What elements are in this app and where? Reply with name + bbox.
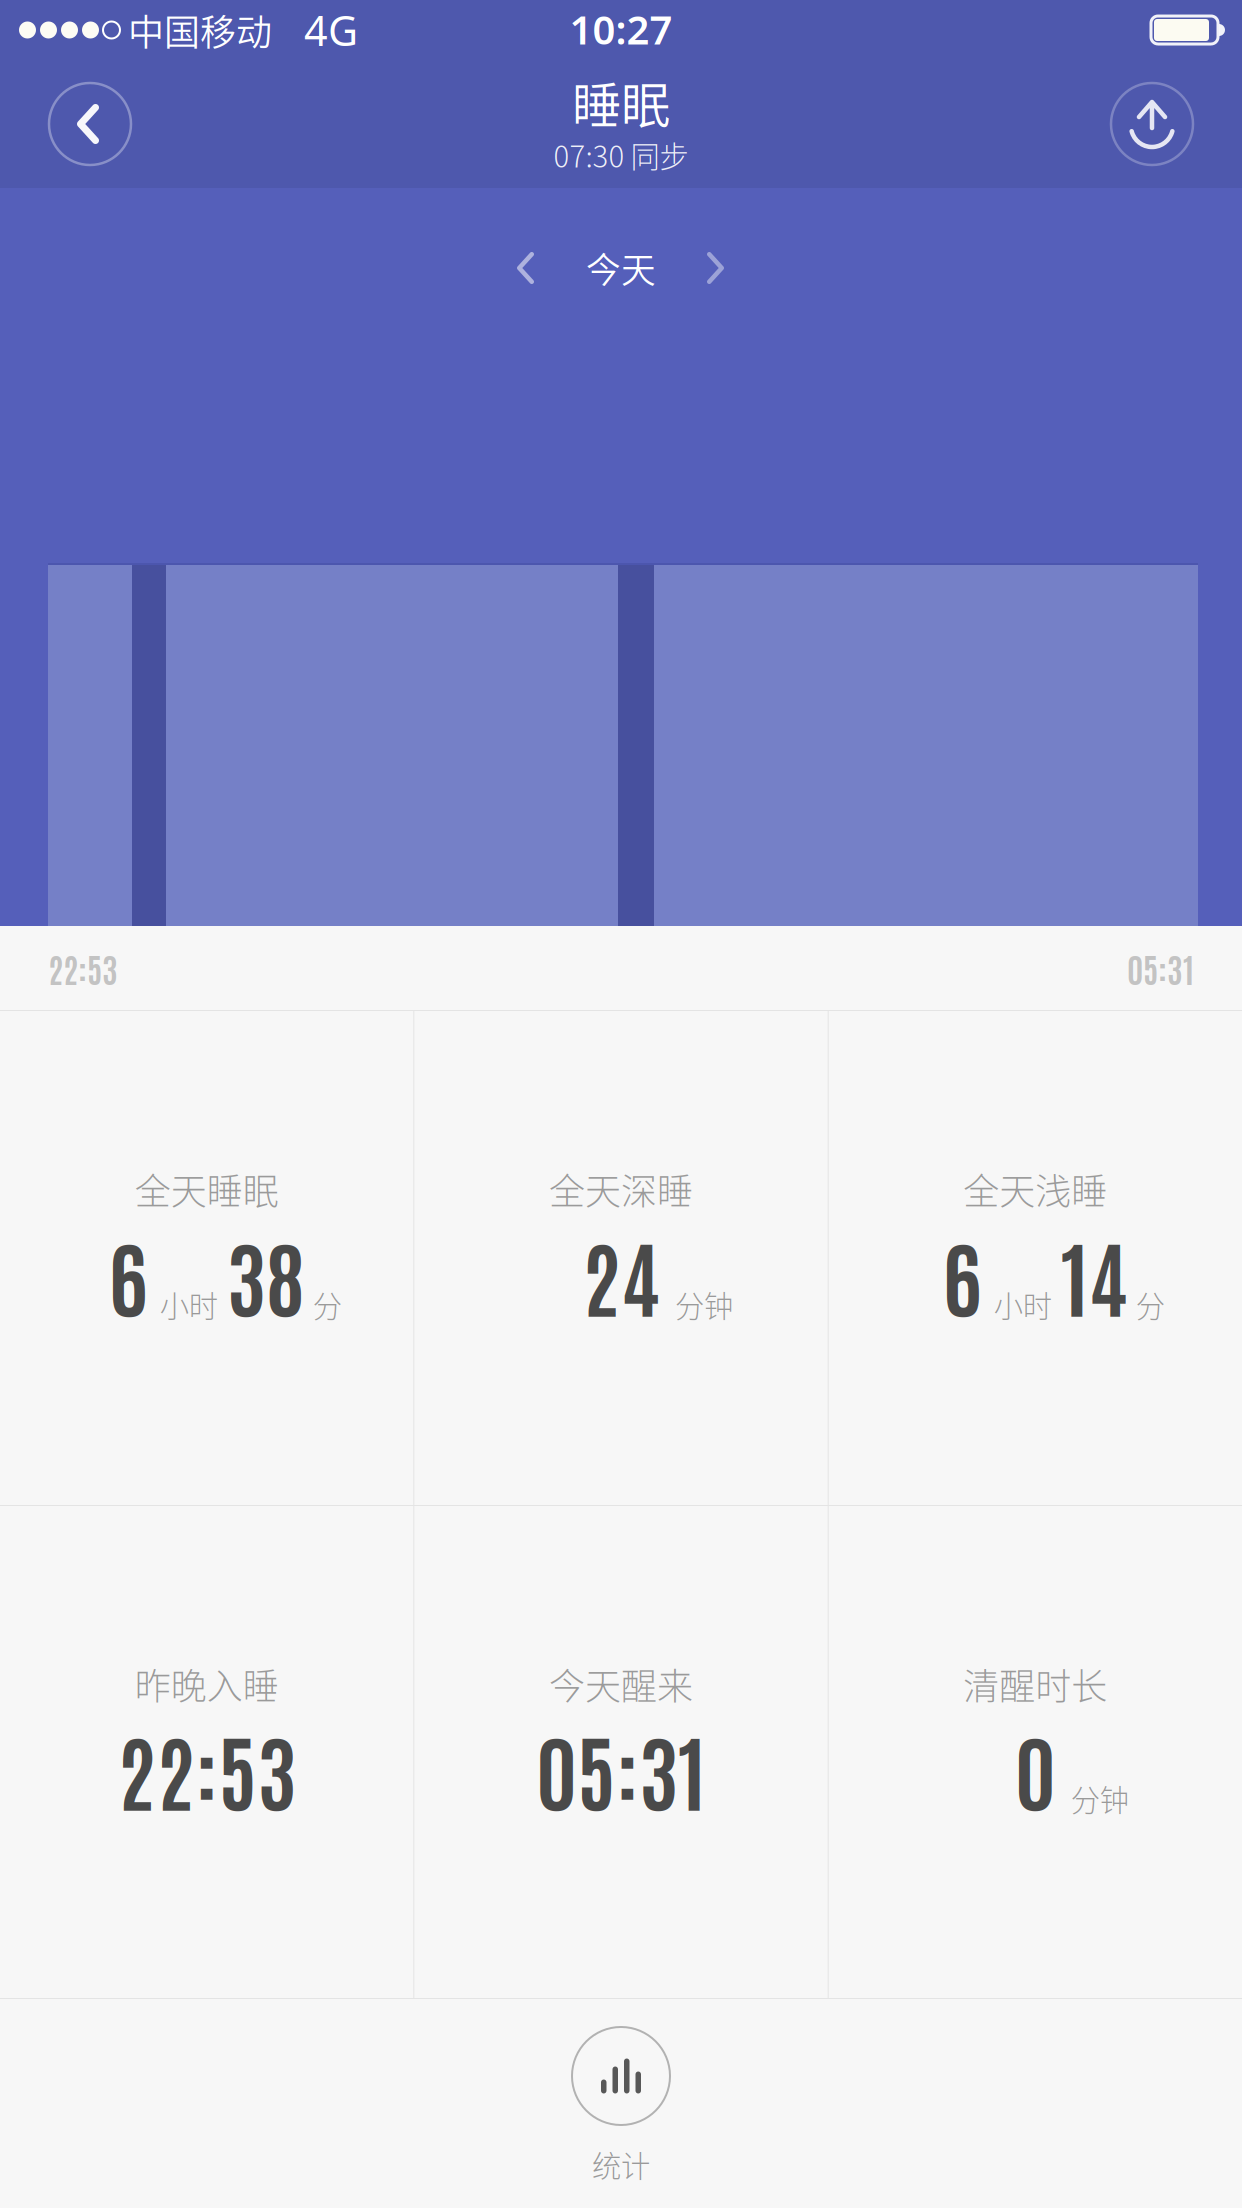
staticText: 分钟	[1071, 1777, 1129, 1819]
staticText: 分钟	[675, 1283, 733, 1325]
staticText: 小时	[160, 1283, 218, 1325]
staticText: 07:30 同步	[553, 133, 688, 176]
staticText: 24	[582, 1220, 660, 1328]
staticText: 6	[943, 1220, 982, 1328]
staticText: 4G	[304, 3, 358, 57]
button[interactable]: Next day	[694, 236, 751, 300]
staticText: 全天深睡	[549, 1163, 693, 1215]
staticText: 05:31	[536, 1714, 706, 1822]
button[interactable]: 统计	[0, 1999, 1242, 2208]
staticText: 05:31	[1127, 946, 1194, 989]
staticText: 今天	[586, 243, 656, 293]
staticText: 22:53	[48, 946, 118, 989]
button[interactable]: Sync	[1097, 69, 1207, 179]
staticText: 睡眠	[572, 66, 670, 137]
staticText: 22:53	[117, 1714, 296, 1822]
staticText: 清醒时长	[963, 1658, 1107, 1710]
staticText: 14	[1061, 1220, 1128, 1328]
staticText: 分	[1136, 1283, 1165, 1325]
staticText: 分	[313, 1283, 342, 1325]
staticText: 0	[1015, 1714, 1056, 1822]
button[interactable]: Back	[35, 69, 145, 179]
button[interactable]: Previous day	[491, 236, 548, 300]
staticText: 6	[109, 1220, 148, 1328]
staticText: 10:27	[569, 2, 672, 55]
staticText: 中国移动	[128, 4, 272, 56]
staticText: 38	[227, 1220, 305, 1328]
staticText: 统计	[592, 2143, 650, 2185]
staticText: 今天醒来	[549, 1658, 693, 1710]
staticText: 小时	[994, 1283, 1052, 1325]
staticText: 全天浅睡	[963, 1163, 1107, 1215]
staticText: 昨晚入睡	[135, 1658, 279, 1710]
staticText: 全天睡眠	[135, 1163, 279, 1215]
